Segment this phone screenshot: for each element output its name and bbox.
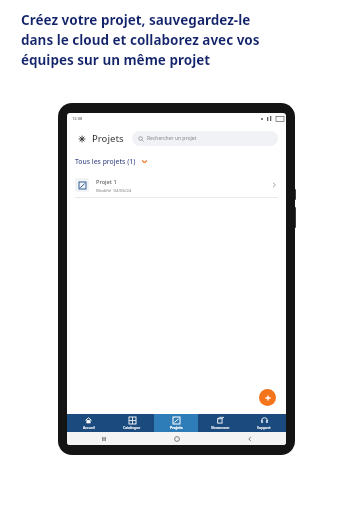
staticText: Accueil bbox=[83, 425, 95, 430]
button[interactable]: Rechercher un projet bbox=[132, 131, 278, 146]
staticText: 12:08 bbox=[72, 116, 83, 121]
staticText: Projets bbox=[92, 132, 124, 145]
staticText: Projet 1 bbox=[96, 178, 117, 186]
button[interactable]: Add project bbox=[259, 389, 276, 406]
staticText: dans le cloud et collaborez avec vos bbox=[21, 31, 260, 49]
button[interactable]: Accueil bbox=[67, 414, 110, 432]
staticText: Showroom bbox=[211, 425, 230, 430]
staticText: Tous les projets (1) bbox=[75, 157, 136, 166]
button[interactable]: Home bbox=[75, 132, 88, 145]
button[interactable]: Catalogue bbox=[110, 414, 154, 432]
staticText: Créez votre projet, sauvegardez-le bbox=[21, 11, 251, 29]
staticText: Projets bbox=[170, 425, 183, 430]
other: Open project bbox=[270, 181, 278, 189]
button[interactable]: Projet 1 bbox=[67, 173, 286, 197]
staticText: Rechercher un projet bbox=[147, 135, 197, 142]
staticText: équipes sur un même projet bbox=[21, 51, 211, 69]
staticText: Catalogue bbox=[123, 425, 141, 430]
staticText: Support bbox=[257, 425, 271, 430]
button[interactable]: Tous les projets (1) bbox=[75, 157, 148, 166]
button[interactable]: Projets bbox=[154, 414, 198, 432]
button[interactable]: Support bbox=[242, 414, 286, 432]
button[interactable]: Showroom bbox=[198, 414, 242, 432]
staticText: Modifié 04/06/24 bbox=[96, 187, 132, 193]
